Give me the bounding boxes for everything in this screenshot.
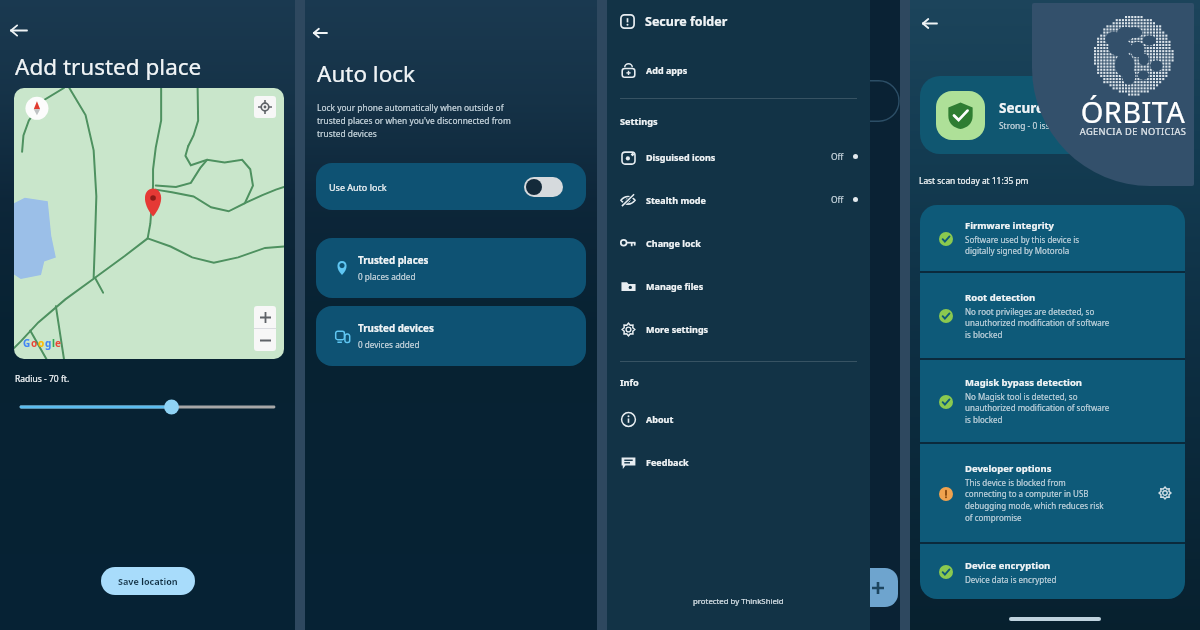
staticText: Lock your phone automatically when outsi… [317, 102, 511, 139]
staticText: Feedback [646, 456, 689, 468]
staticText: This device is blocked from connecting t… [965, 477, 1104, 524]
button[interactable]: Back [913, 7, 945, 39]
staticText: No root privileges are detected, so unau… [965, 306, 1110, 341]
staticText: Add apps [646, 64, 688, 76]
button[interactable]: Add [868, 568, 898, 607]
staticText: Add trusted place [15, 51, 202, 82]
button[interactable]: Secure [920, 76, 1185, 154]
staticText: Info [620, 376, 639, 389]
button[interactable]: Disguised icons [607, 135, 870, 178]
staticText: Settings [620, 115, 658, 128]
button[interactable]: Device encryption [920, 544, 1185, 599]
staticText: o [31, 336, 38, 350]
button[interactable]: Firmware integrity [920, 205, 1185, 271]
staticText: Change lock [646, 237, 701, 249]
button[interactable]: Use Auto lock [316, 163, 586, 210]
staticText: More settings [646, 323, 709, 335]
staticText: Trusted places [358, 254, 429, 267]
button[interactable]: My location [254, 96, 276, 118]
staticText: 0 devices added [358, 339, 420, 350]
button[interactable]: Zoom in [254, 306, 276, 328]
button[interactable]: Developer options [920, 444, 1185, 542]
button[interactable]: Zoom out [254, 329, 276, 351]
staticText: G [23, 336, 31, 350]
staticText: g [45, 336, 52, 350]
staticText: Software used by this device is digitall… [965, 234, 1080, 257]
staticText: Magisk bypass detection [965, 376, 1083, 389]
staticText: Off [831, 194, 844, 205]
staticText: Trusted devices [358, 322, 434, 335]
button[interactable]: Magisk bypass detection [920, 360, 1185, 442]
button[interactable]: Back [305, 18, 335, 48]
button[interactable]: Settings [1155, 483, 1175, 503]
staticText: Disguised icons [646, 151, 716, 163]
staticText: Save location [118, 575, 178, 587]
staticText: o [38, 336, 45, 350]
button[interactable]: Secure folder [607, 5, 870, 37]
staticText: Secure [999, 99, 1045, 117]
button[interactable]: Stealth mode [607, 178, 870, 221]
staticText: Device data is encrypted [965, 574, 1057, 585]
staticText: No Magisk tool is detected, so unauthori… [965, 391, 1110, 426]
staticText: Auto lock [317, 58, 416, 89]
staticText: Strong - 0 issues [999, 120, 1064, 131]
staticText: 0 places added [358, 271, 416, 282]
staticText: AGENCIA DE NOTICIAS [1078, 125, 1188, 138]
button[interactable]: About [607, 397, 870, 440]
staticText: Manage files [646, 280, 704, 292]
staticText: Developer options [965, 462, 1052, 475]
staticText: Secure folder [645, 13, 728, 30]
staticText: ÓRBITA [1078, 92, 1188, 131]
staticText: Root detection [965, 291, 1036, 304]
staticText: Use Auto lock [329, 181, 387, 193]
staticText: Stealth mode [646, 194, 706, 206]
staticText: About [646, 413, 674, 425]
staticText: Last scan today at 11:35 pm [919, 175, 1029, 186]
button[interactable]: Change lock [607, 221, 870, 264]
staticText: Device encryption [965, 559, 1051, 572]
button[interactable]: Save location [101, 567, 195, 595]
button[interactable]: Trusted places [316, 238, 586, 298]
staticText: Radius - 70 ft. [15, 373, 70, 385]
staticText: Firmware integrity [965, 219, 1055, 232]
staticText: protected by ThinkShield [693, 596, 784, 607]
button[interactable]: Manage files [607, 264, 870, 307]
staticText: e [55, 336, 61, 350]
staticText: Off [831, 151, 844, 162]
button[interactable]: Root detection [920, 273, 1185, 358]
button[interactable]: Back [2, 14, 35, 47]
staticText: l [52, 336, 55, 350]
button[interactable]: More settings [607, 307, 870, 350]
button[interactable]: My location [14, 88, 284, 359]
button[interactable]: Add apps [607, 48, 870, 91]
button[interactable]: Trusted devices [316, 306, 586, 366]
button[interactable]: Feedback [607, 440, 870, 483]
